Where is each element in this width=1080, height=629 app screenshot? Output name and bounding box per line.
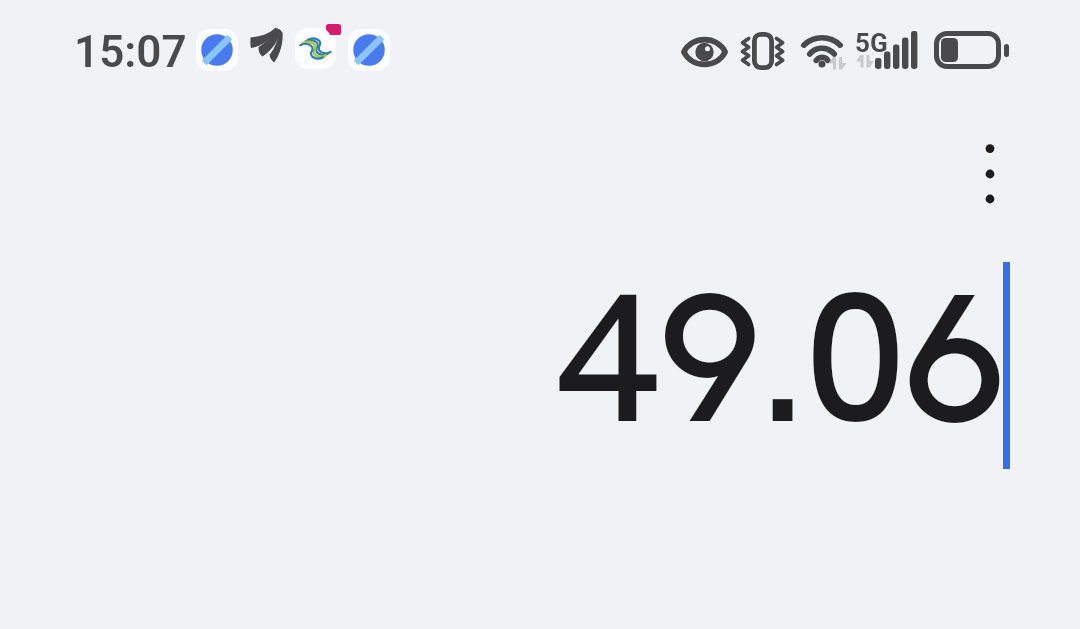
staticText: 5G [855, 28, 888, 58]
staticText: 15:07 [74, 26, 187, 78]
button[interactable]: 49.06 [0, 239, 1016, 476]
staticText: 49.06 [557, 239, 1009, 476]
button[interactable]: More options [941, 112, 1037, 212]
